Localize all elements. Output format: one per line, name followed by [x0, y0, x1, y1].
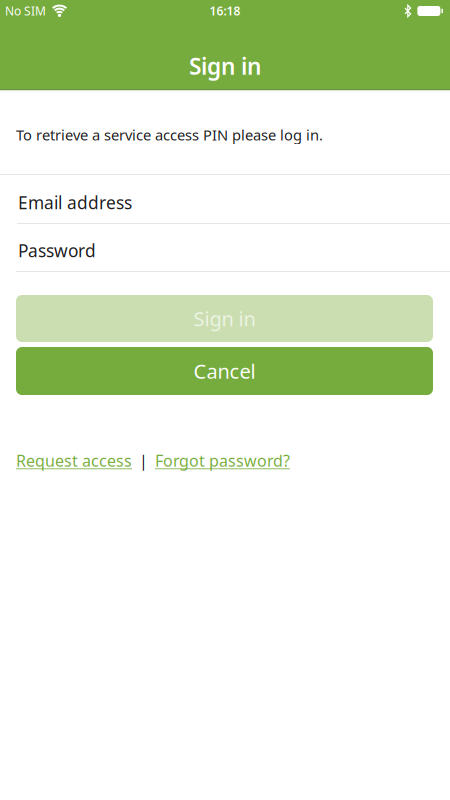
button[interactable]: Cancel	[16, 347, 433, 395]
button[interactable]: Forgot password?	[155, 450, 290, 471]
staticText: 16:18	[209, 3, 240, 19]
button[interactable]: Password	[0, 224, 450, 271]
staticText: Sign in	[193, 305, 255, 332]
button[interactable]: Sign in	[16, 295, 433, 342]
staticText: Cancel	[193, 358, 255, 384]
staticText: |	[139, 450, 148, 471]
staticText: Forgot password?	[155, 450, 290, 471]
button[interactable]: Request access	[16, 450, 132, 471]
staticText: Request access	[16, 450, 132, 471]
staticText: Sign in	[189, 51, 261, 81]
staticText: No SIM	[5, 3, 46, 19]
staticText: Password	[18, 239, 96, 262]
staticText: To retrieve a service access PIN please …	[16, 125, 323, 144]
staticText: Email address	[18, 191, 132, 214]
button[interactable]: Email address	[0, 175, 450, 223]
